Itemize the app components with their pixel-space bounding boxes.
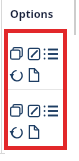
button[interactable]: Copy (8, 100, 25, 121)
button[interactable]: Format list (42, 100, 59, 121)
button[interactable]: Undo (8, 64, 25, 85)
staticText: Options (10, 6, 54, 21)
button[interactable]: Format list (42, 43, 59, 64)
button[interactable]: New document (25, 64, 42, 85)
button[interactable]: Edit (25, 43, 42, 64)
button[interactable]: Undo (8, 121, 25, 142)
button[interactable]: New document (25, 121, 42, 142)
button[interactable]: Copy (8, 43, 25, 64)
button[interactable]: Edit (25, 100, 42, 121)
